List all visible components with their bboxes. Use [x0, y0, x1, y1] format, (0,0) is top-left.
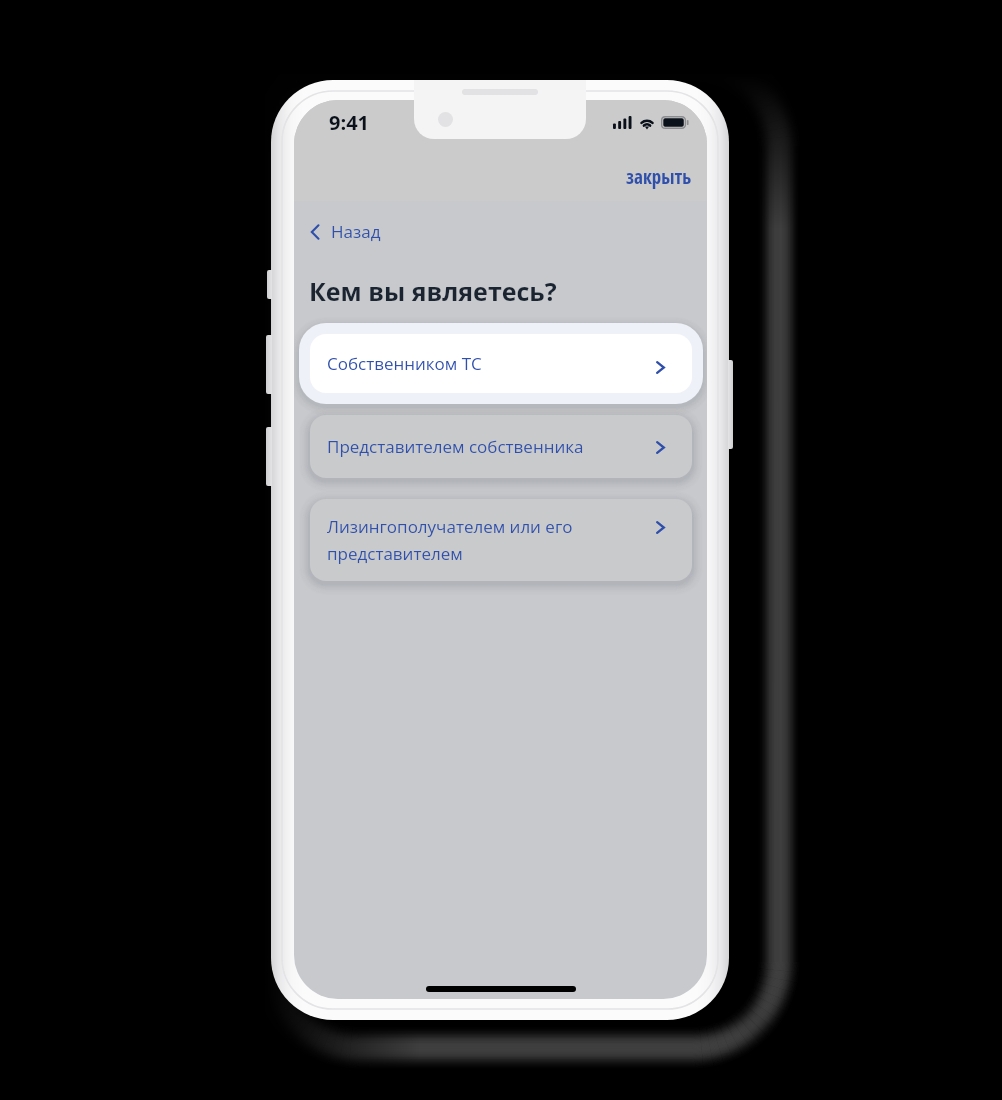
button[interactable]: Собственником ТС: [310, 334, 692, 393]
staticText: закрыть: [626, 164, 692, 190]
staticText: Собственником ТС: [327, 352, 482, 375]
other: Выбрать: [656, 361, 665, 374]
staticText: Назад: [331, 220, 381, 243]
staticText: Лизингополучателем или его представителе…: [327, 515, 573, 565]
button[interactable]: закрыть: [616, 155, 702, 199]
staticText: Кем вы являетесь?: [309, 274, 557, 308]
button[interactable]: Представителем собственника: [310, 415, 692, 478]
other: Выбрать: [656, 521, 665, 534]
other: Выбрать: [656, 441, 665, 454]
button[interactable]: Назад: [303, 214, 388, 249]
staticText: Представителем собственника: [327, 435, 584, 458]
button[interactable]: Лизингополучателем или его представителе…: [310, 499, 692, 581]
staticText: 9:41: [329, 109, 370, 136]
